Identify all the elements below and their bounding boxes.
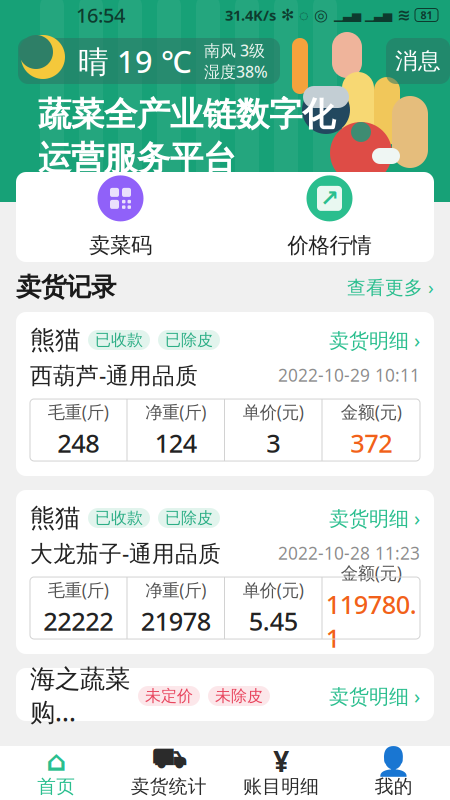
button[interactable]: ¥ — [225, 746, 337, 800]
staticText: ⛟ — [151, 747, 186, 775]
staticText: ↗ — [320, 185, 339, 211]
staticText: 已收款 — [95, 508, 143, 528]
staticText: 金额(元) — [341, 400, 402, 423]
button[interactable]: ⌂ — [0, 746, 112, 800]
staticText: 2022-10-29 10:11 — [278, 363, 420, 386]
staticText: 晴 19 ℃ — [78, 41, 192, 81]
button[interactable]: ↗ — [225, 172, 434, 262]
staticText: ▁▃▅ — [365, 8, 392, 22]
button[interactable]: 卖菜码 — [16, 172, 225, 262]
staticText: 海之蔬菜购... — [30, 664, 130, 728]
button[interactable]: 消息 — [386, 38, 450, 84]
staticText: 3 — [266, 426, 280, 460]
button[interactable]: 熊猫 — [16, 312, 434, 476]
staticText: 首页 — [37, 775, 75, 798]
staticText: 净重(斤) — [145, 400, 206, 423]
staticText: 119780.1 — [326, 587, 417, 655]
staticText: 5.45 — [249, 604, 298, 638]
staticText: 2022-10-28 11:23 — [278, 541, 420, 564]
button[interactable]: ⛟ — [112, 746, 225, 800]
staticText: 运营服务平台 — [38, 138, 236, 179]
staticText: ≋ — [397, 6, 410, 24]
staticText: ¥ — [273, 742, 289, 780]
staticText: 卖货记录 — [16, 271, 116, 302]
staticText: 单价(元) — [243, 400, 304, 423]
staticText: 南风 3级 — [204, 40, 265, 61]
staticText: 湿度38% — [204, 61, 268, 82]
button[interactable]: 查看更多 › — [347, 275, 434, 299]
staticText: ⌂ — [46, 745, 66, 777]
staticText: 未定价 — [145, 686, 193, 706]
staticText: 熊猫 — [30, 324, 80, 355]
staticText: 熊猫 — [30, 502, 80, 533]
button[interactable]: 👤 — [337, 746, 450, 800]
staticText: 我的 — [375, 775, 413, 798]
staticText: 卖货统计 — [131, 775, 207, 798]
staticText: 卖货明细 › — [329, 683, 420, 709]
staticText: 81 — [420, 8, 432, 22]
staticText: 未除皮 — [215, 686, 263, 706]
staticText: 价格行情 — [287, 232, 371, 259]
staticText: 22222 — [43, 604, 113, 638]
button[interactable]: 海之蔬菜购... — [16, 668, 434, 721]
staticText: 16:54 — [76, 2, 125, 28]
staticText: 毛重(斤) — [48, 578, 109, 601]
staticText: 大龙茄子-通用品质 — [30, 538, 221, 568]
staticText: ▁▃▅ — [334, 8, 361, 22]
staticText: 蔬菜全产业链数字化 — [38, 94, 335, 135]
staticText: 卖货明细 › — [329, 327, 420, 353]
staticText: 单价(元) — [243, 578, 304, 601]
staticText: 248 — [57, 426, 99, 460]
staticText: 31.4K/s — [225, 5, 276, 25]
staticText: 卖货明细 › — [329, 505, 420, 531]
staticText: 消息 — [395, 47, 441, 75]
staticText: 金额(元) — [341, 561, 402, 584]
staticText: 毛重(斤) — [48, 400, 109, 423]
staticText: 账目明细 — [243, 775, 319, 798]
staticText: 372 — [350, 426, 392, 460]
staticText: ✻ — [281, 6, 294, 24]
staticText: 已除皮 — [165, 330, 213, 350]
staticText: 已收款 — [95, 330, 143, 350]
staticText: 西葫芦-通用品质 — [30, 360, 198, 390]
staticText: 21978 — [141, 604, 211, 638]
staticText: 查看更多 › — [347, 275, 434, 299]
staticText: 124 — [155, 426, 197, 460]
staticText: ◎ — [314, 6, 328, 24]
staticText: 卖菜码 — [89, 232, 152, 259]
staticText: 👤 — [376, 745, 411, 777]
staticText: ◌ — [299, 4, 309, 26]
staticText: 已除皮 — [165, 508, 213, 528]
button[interactable]: 熊猫 — [16, 490, 434, 654]
staticText: 净重(斤) — [145, 578, 206, 601]
